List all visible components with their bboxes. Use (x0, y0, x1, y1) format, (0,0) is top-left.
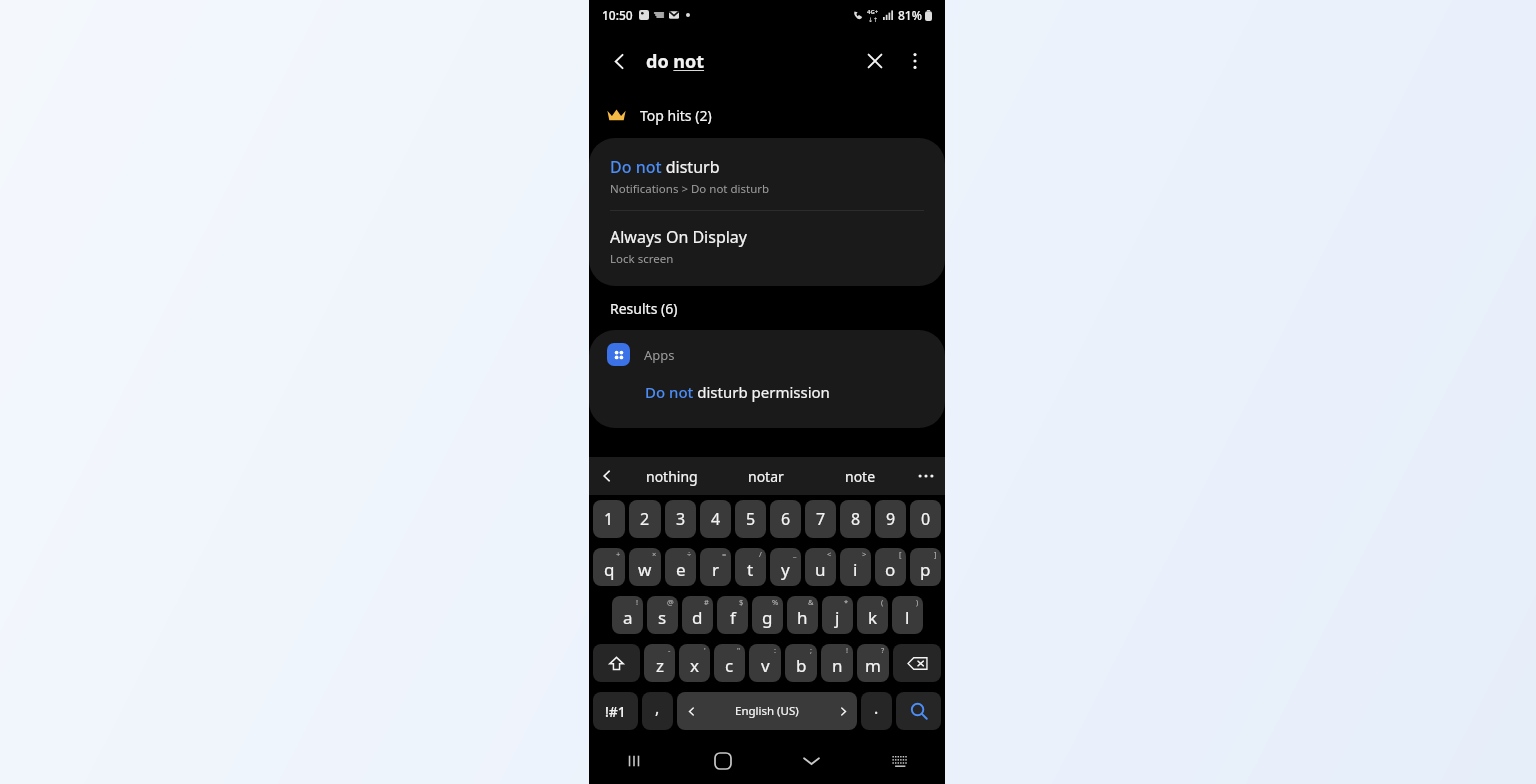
staticText: Do not disturb permission (645, 382, 830, 402)
button[interactable]: ' (679, 644, 710, 682)
staticText: do not (646, 49, 705, 74)
staticText: ( (881, 597, 884, 607)
button[interactable]: 8 (840, 500, 871, 538)
button[interactable]: $ (717, 596, 748, 634)
button[interactable]: ! (612, 596, 643, 634)
button[interactable]: English (US) (677, 692, 857, 730)
staticText: 2 (640, 508, 650, 530)
button[interactable]: & (787, 596, 818, 634)
staticText: !#1 (605, 702, 626, 721)
button[interactable]: × (629, 548, 661, 586)
staticText: . (874, 697, 879, 719)
button[interactable]: 5 (735, 500, 766, 538)
staticText: Lock screen (610, 251, 674, 267)
button[interactable]: Recents (589, 738, 678, 784)
staticText: note (845, 467, 876, 486)
staticText: ! (846, 645, 849, 655)
staticText: b (796, 654, 807, 677)
staticText: 6 (781, 508, 791, 530)
staticText: 7 (816, 508, 826, 530)
button[interactable]: note (813, 457, 907, 495)
button[interactable]: ) (892, 596, 923, 634)
button[interactable]: _ (770, 548, 801, 586)
button[interactable]: 9 (875, 500, 906, 538)
button[interactable]: [ (875, 548, 906, 586)
staticText: - (668, 645, 671, 655)
staticText: @ (667, 597, 674, 607)
staticText: t (747, 558, 754, 581)
button[interactable]: Search (896, 692, 941, 730)
button[interactable]: !#1 (593, 692, 638, 730)
button[interactable]: More options (895, 41, 935, 81)
staticText: Apps (644, 346, 675, 364)
staticText: Top hits (2) (640, 106, 712, 125)
button[interactable]: 3 (665, 500, 696, 538)
button[interactable]: " (714, 644, 745, 682)
button[interactable]: Always On Display (589, 211, 945, 286)
staticText: h (797, 606, 808, 629)
button[interactable]: ? (857, 644, 889, 682)
button[interactable]: 6 (770, 500, 801, 538)
button[interactable]: Previous suggestions (589, 457, 625, 495)
button[interactable]: Do not disturb permission (589, 374, 945, 414)
button[interactable]: < (805, 548, 836, 586)
button[interactable]: ] (910, 548, 941, 586)
button[interactable]: ÷ (665, 548, 696, 586)
button[interactable]: Hide keyboard (767, 738, 856, 784)
button[interactable]: Home (678, 738, 767, 784)
button[interactable]: 7 (805, 500, 836, 538)
button[interactable]: Apps (589, 330, 945, 374)
staticText: > (862, 549, 867, 559)
staticText: a (623, 606, 633, 629)
button[interactable]: * (822, 596, 853, 634)
staticText: [ (899, 549, 902, 559)
button[interactable]: nothing (625, 457, 719, 495)
staticText: + (616, 549, 621, 559)
staticText: x (690, 654, 699, 677)
button[interactable]: > (840, 548, 871, 586)
button[interactable]: do not (646, 49, 855, 74)
button[interactable]: @ (647, 596, 678, 634)
staticText: 3 (676, 508, 686, 530)
button[interactable]: - (644, 644, 675, 682)
button[interactable]: ! (821, 644, 853, 682)
staticText: notar (748, 467, 784, 486)
staticText: 4G+ (867, 8, 879, 16)
button[interactable]: . (861, 692, 892, 730)
staticText: nothing (646, 467, 698, 486)
staticText: 9 (886, 508, 896, 530)
staticText: 81% (898, 7, 922, 23)
button[interactable]: % (752, 596, 783, 634)
staticText: 4 (711, 508, 721, 530)
button[interactable]: , (642, 692, 673, 730)
staticText: Do not disturb (610, 156, 720, 178)
staticText: × (652, 549, 657, 559)
button[interactable]: # (682, 596, 713, 634)
button[interactable]: 4 (700, 500, 731, 538)
button[interactable]: Clear search (855, 41, 895, 81)
button[interactable]: Do not disturb (589, 138, 945, 210)
button[interactable]: + (593, 548, 625, 586)
staticText: ↓↑ (868, 16, 879, 23)
button[interactable]: More suggestions (907, 457, 945, 495)
staticText: u (815, 558, 826, 581)
button[interactable]: notar (719, 457, 813, 495)
button[interactable]: / (735, 548, 766, 586)
button[interactable]: Back (599, 41, 639, 81)
button[interactable]: ( (857, 596, 888, 634)
staticText: < (827, 549, 832, 559)
staticText: 5 (746, 508, 756, 530)
staticText: 10:50 (602, 7, 633, 23)
button[interactable]: Backspace (893, 644, 941, 682)
staticText: p (920, 558, 931, 581)
staticText: e (676, 558, 686, 581)
button[interactable]: : (749, 644, 781, 682)
staticText: f (730, 606, 736, 629)
button[interactable]: 0 (910, 500, 941, 538)
button[interactable]: = (700, 548, 731, 586)
button[interactable]: 2 (629, 500, 661, 538)
button[interactable]: ; (785, 644, 817, 682)
button[interactable]: Switch keyboard (856, 738, 945, 784)
button[interactable]: Shift (593, 644, 640, 682)
button[interactable]: 1 (593, 500, 625, 538)
